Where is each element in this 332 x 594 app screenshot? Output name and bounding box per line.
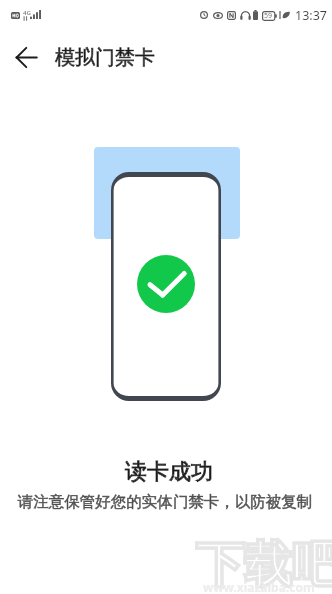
staticText: 4G (23, 9, 31, 17)
staticText: 模拟门禁卡 (55, 45, 155, 70)
button[interactable]: Back (6, 37, 46, 77)
staticText: www.xiazaiba.com (203, 579, 315, 594)
staticText: 13:37 (295, 7, 327, 24)
staticText: 读卡成功 (3, 458, 332, 486)
staticText: 读卡成功 (3, 458, 332, 486)
staticText: 请注意保管好您的实体门禁卡，以防被复制 (0, 492, 331, 512)
staticText: 下载吧 (196, 535, 332, 594)
staticText: 模拟门禁卡 (55, 45, 155, 70)
staticText: 请注意保管好您的实体门禁卡，以防被复制 (0, 492, 331, 512)
staticText: 59 (264, 11, 273, 21)
